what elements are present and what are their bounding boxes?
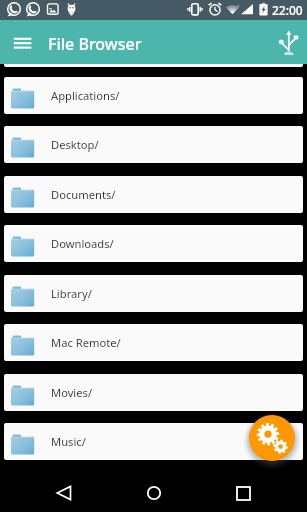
staticText: Library/	[51, 286, 92, 301]
button[interactable]: Movies/	[4, 374, 303, 411]
button[interactable]: Applications/	[4, 77, 303, 114]
staticText: Music/	[51, 434, 86, 449]
button[interactable]: Library/	[4, 275, 303, 312]
button[interactable]: Mac Remote/	[4, 324, 303, 361]
button[interactable]: Desktop/	[4, 126, 303, 163]
staticText: Documents/	[51, 187, 116, 202]
button[interactable]: Recents	[219, 469, 267, 512]
button[interactable]: Music/	[4, 423, 303, 460]
staticText: Movies/	[51, 385, 93, 400]
staticText: File Browser	[48, 33, 142, 55]
button[interactable]: Home	[130, 469, 178, 512]
button[interactable]: Settings	[249, 415, 295, 461]
button[interactable]: Documents/	[4, 176, 303, 213]
staticText: Desktop/	[51, 137, 99, 152]
staticText: Mac Remote/	[51, 335, 121, 350]
staticText: Applications/	[51, 88, 120, 103]
staticText: 22:00	[272, 2, 303, 18]
button[interactable]: Menu	[6, 26, 38, 58]
button[interactable]: USB	[273, 27, 303, 57]
staticText: Downloads/	[51, 236, 114, 251]
button[interactable]: Back	[40, 469, 88, 512]
button[interactable]: Downloads/	[4, 225, 303, 262]
